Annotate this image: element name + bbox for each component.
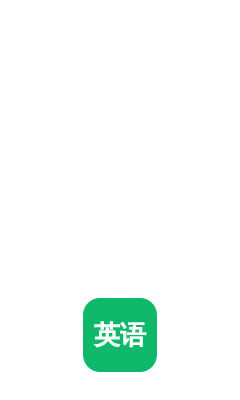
button[interactable]: 英语 app icon [83, 298, 157, 372]
staticText: 英语 [94, 319, 146, 352]
